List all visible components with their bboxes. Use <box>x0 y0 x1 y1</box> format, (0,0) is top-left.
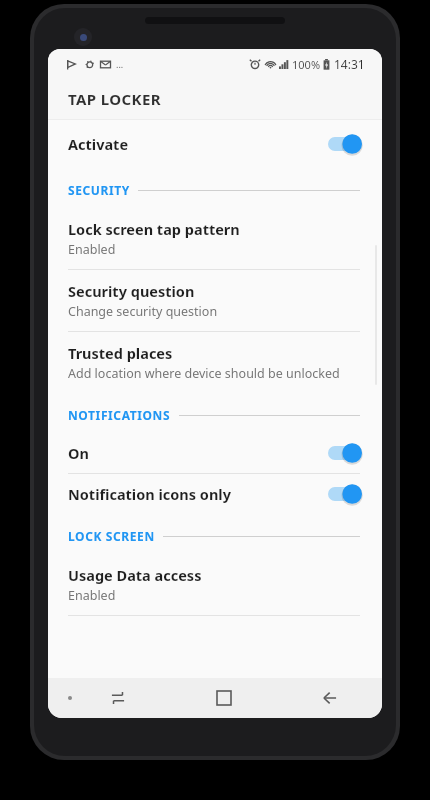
staticText: Change security question <box>68 303 218 320</box>
button[interactable]: Usage Data access <box>48 554 382 615</box>
button[interactable]: Trusted places <box>48 332 382 393</box>
staticText: Activate <box>68 134 328 154</box>
staticText: Add location where device should be unlo… <box>68 365 340 382</box>
staticText: NOTIFICATIONS <box>68 407 171 423</box>
button[interactable]: Notification icons only <box>48 474 382 514</box>
staticText: 14:31 <box>334 56 365 72</box>
staticText: Security question <box>68 281 195 301</box>
button[interactable]: Toggle <box>328 134 362 154</box>
button[interactable]: Toggle <box>328 443 362 463</box>
staticText: Trusted places <box>68 343 173 363</box>
button[interactable]: Recent apps <box>202 678 246 718</box>
staticText: Usage Data access <box>68 565 202 585</box>
staticText: LOCK SCREEN <box>68 528 155 544</box>
staticText: ... <box>116 58 124 70</box>
button[interactable]: Lock screen tap pattern <box>48 208 382 269</box>
staticText: Enabled <box>68 241 116 258</box>
staticText: Enabled <box>68 587 116 604</box>
button[interactable]: Toggle <box>328 484 362 504</box>
staticText: 100% <box>292 57 321 72</box>
button[interactable]: On <box>48 433 382 473</box>
staticText: SECURITY <box>68 182 130 198</box>
staticText: Notification icons only <box>68 484 328 504</box>
staticText: TAP LOCKER <box>68 89 161 109</box>
button[interactable]: Hide keyboard <box>96 678 140 718</box>
button[interactable]: Activate <box>48 120 382 168</box>
staticText: Lock screen tap pattern <box>68 219 240 239</box>
staticText: On <box>68 443 328 463</box>
button[interactable]: Back <box>308 678 352 718</box>
button[interactable]: Security question <box>48 270 382 331</box>
